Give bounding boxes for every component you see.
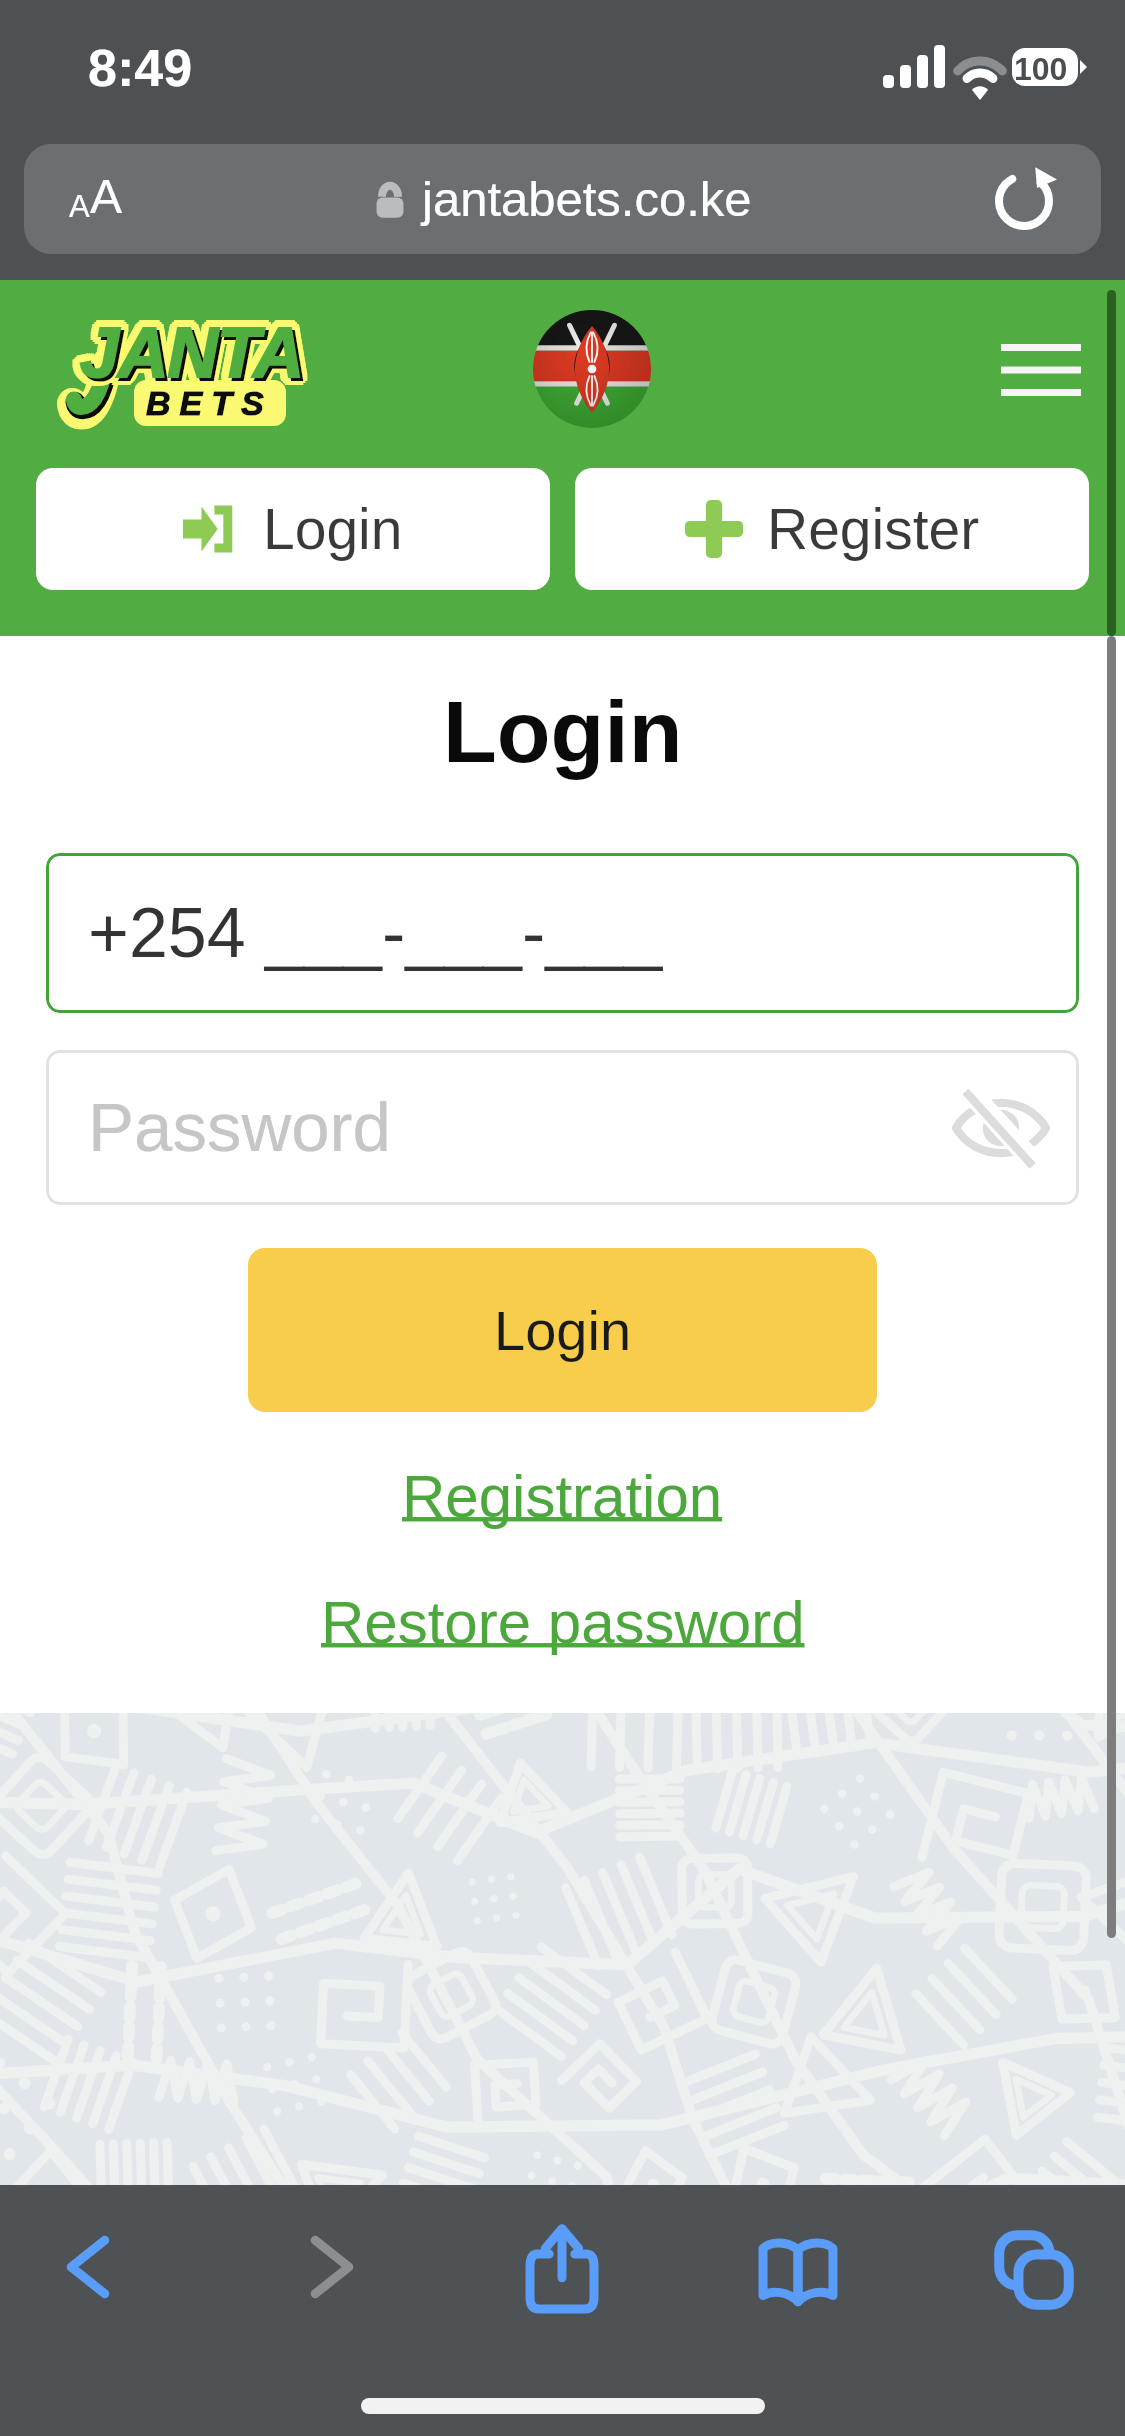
staticText: JANTA <box>83 319 307 397</box>
staticText: JANTA <box>87 311 311 389</box>
staticText: BETS <box>146 384 273 422</box>
staticText: JANTA <box>81 317 305 395</box>
staticText: JANTA <box>79 319 303 397</box>
staticText: JANTA <box>79 315 303 393</box>
staticText: JANTA <box>81 315 305 393</box>
staticText: JANTA <box>81 311 305 389</box>
button[interactable]: jantabets.co.ke <box>24 144 1101 254</box>
staticText: JANTA <box>85 311 309 389</box>
staticText: JANTA <box>79 313 303 391</box>
staticText: JANTA <box>85 313 309 391</box>
staticText: JANTA <box>83 315 307 393</box>
button[interactable]: Login <box>36 468 550 590</box>
staticText: JANTA <box>77 315 301 393</box>
staticText: JANTA <box>75 313 299 391</box>
staticText: A <box>69 189 90 224</box>
staticText: JANTA <box>79 309 303 387</box>
staticText: JANTA <box>77 317 301 395</box>
staticText: jantabets.co.ke <box>422 172 752 227</box>
staticText: JANTA <box>85 319 309 397</box>
button[interactable]: Back <box>68 2238 108 2296</box>
staticText: JANTA <box>87 315 311 393</box>
staticText: JANTA <box>77 309 301 387</box>
staticText: 100 <box>1014 51 1068 87</box>
staticText: JANTA <box>81 313 305 391</box>
button[interactable]: Show password <box>953 1090 1049 1166</box>
staticText: JANTA <box>81 321 305 399</box>
staticText: JANTA <box>81 319 305 397</box>
staticText: JANTA <box>73 311 297 389</box>
staticText: JANTA <box>79 321 303 399</box>
button[interactable]: Share <box>530 2227 594 2309</box>
staticText: JANTA <box>73 313 297 391</box>
staticText: JANTA <box>77 311 301 389</box>
staticText: JANTA <box>83 317 307 395</box>
button[interactable]: Password <box>46 1050 1079 1205</box>
staticText: JANTA <box>75 317 299 395</box>
staticText: JANTA <box>81 307 305 385</box>
staticText: JANTA <box>79 311 303 389</box>
staticText: JANTA <box>77 307 301 385</box>
staticText: JANTA <box>79 307 303 385</box>
staticText: JANTA <box>83 311 307 389</box>
staticText: JANTA <box>77 321 301 399</box>
button[interactable]: Forward <box>312 2238 352 2296</box>
staticText: 8:49 <box>88 39 193 97</box>
button[interactable]: Register <box>575 468 1089 590</box>
staticText: JANTA <box>83 321 307 399</box>
staticText: JANTA <box>81 309 305 387</box>
staticText: JANTA <box>85 317 309 395</box>
staticText: JANTA <box>87 317 311 395</box>
staticText: Register <box>767 497 980 561</box>
staticText: JANTA <box>77 313 301 391</box>
staticText: JANTA <box>75 319 299 397</box>
button[interactable]: Tabs <box>997 2233 1071 2307</box>
button[interactable]: Menu <box>1001 340 1081 396</box>
staticText: JANTA <box>87 313 311 391</box>
staticText: JANTA <box>75 311 299 389</box>
button[interactable]: Registration <box>402 1463 723 1530</box>
button[interactable]: Bookmarks <box>760 2241 836 2303</box>
staticText: JANTA <box>83 307 307 385</box>
button[interactable]: Reload <box>993 168 1055 230</box>
staticText: Password <box>88 1089 391 1166</box>
staticText: JANTA <box>83 309 307 387</box>
staticText: Login <box>443 682 683 780</box>
staticText: +254 ___-___-___ <box>88 894 663 972</box>
staticText: JANTA <box>80 314 304 392</box>
staticText: Login <box>494 1299 632 1362</box>
staticText: JANTA <box>83 317 307 395</box>
staticText: JANTA <box>85 315 309 393</box>
staticText: JANTA <box>79 317 303 395</box>
staticText: JANTA <box>75 315 299 393</box>
button[interactable]: Restore password <box>321 1589 805 1656</box>
staticText: JANTA <box>85 309 309 387</box>
staticText: JANTA <box>77 319 301 397</box>
staticText: A <box>90 170 123 224</box>
staticText: Login <box>263 497 403 561</box>
staticText: JANTA <box>73 317 297 395</box>
button[interactable]: Login <box>248 1248 877 1412</box>
staticText: JANTA <box>73 315 297 393</box>
staticText: JANTA <box>83 313 307 391</box>
staticText: JANTA <box>75 309 299 387</box>
button[interactable]: +254 ___-___-___ <box>46 853 1079 1013</box>
